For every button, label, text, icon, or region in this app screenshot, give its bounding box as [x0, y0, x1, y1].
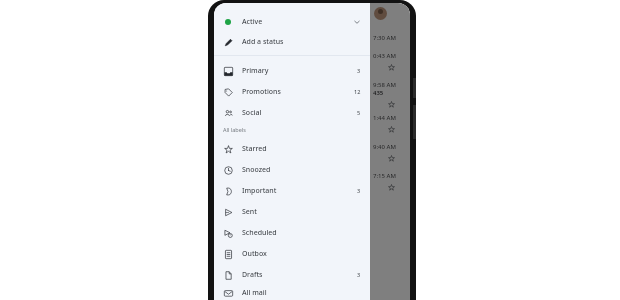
button[interactable]: All mail: [214, 285, 370, 300]
staticText: 9:58 AM: [373, 81, 396, 89]
button[interactable]: [370, 3, 410, 300]
button[interactable]: Sent: [214, 201, 370, 222]
staticText: Active: [242, 17, 263, 27]
staticText: Sent: [242, 207, 257, 217]
staticText: 3: [357, 187, 361, 194]
button[interactable]: Active: [214, 12, 370, 31]
staticText: 7:30 AM: [373, 34, 396, 42]
staticText: Important: [242, 186, 277, 196]
staticText: Drafts: [242, 270, 263, 280]
staticText: 3: [357, 271, 361, 278]
staticText: 9:40 AM: [373, 143, 396, 151]
staticText: 1:44 AM: [373, 114, 396, 122]
staticText: 435: [373, 89, 384, 97]
staticText: Promotions: [242, 87, 281, 97]
staticText: All labels: [223, 126, 246, 133]
button[interactable]: Scheduled: [214, 222, 370, 243]
staticText: All mail: [242, 288, 267, 298]
staticText: 7:15 AM: [373, 172, 396, 180]
staticText: 0:43 AM: [373, 52, 396, 60]
staticText: 3: [357, 67, 361, 74]
button[interactable]: Snoozed: [214, 159, 370, 180]
staticText: Outbox: [242, 249, 267, 259]
staticText: Add a status: [242, 37, 284, 47]
button[interactable]: Add a status: [214, 31, 370, 52]
staticText: Starred: [242, 144, 267, 154]
staticText: 12: [354, 88, 361, 95]
button[interactable]: Starred: [214, 138, 370, 159]
button[interactable]: Outbox: [214, 243, 370, 264]
button[interactable]: Drafts: [214, 264, 370, 285]
button[interactable]: Important: [214, 180, 370, 201]
staticText: Primary: [242, 66, 269, 76]
button[interactable]: Social: [214, 102, 370, 123]
staticText: Snoozed: [242, 165, 271, 175]
staticText: Scheduled: [242, 228, 277, 238]
staticText: Social: [242, 108, 262, 118]
button[interactable]: Primary: [214, 60, 370, 81]
staticText: 5: [357, 109, 361, 116]
button[interactable]: Promotions: [214, 81, 370, 102]
